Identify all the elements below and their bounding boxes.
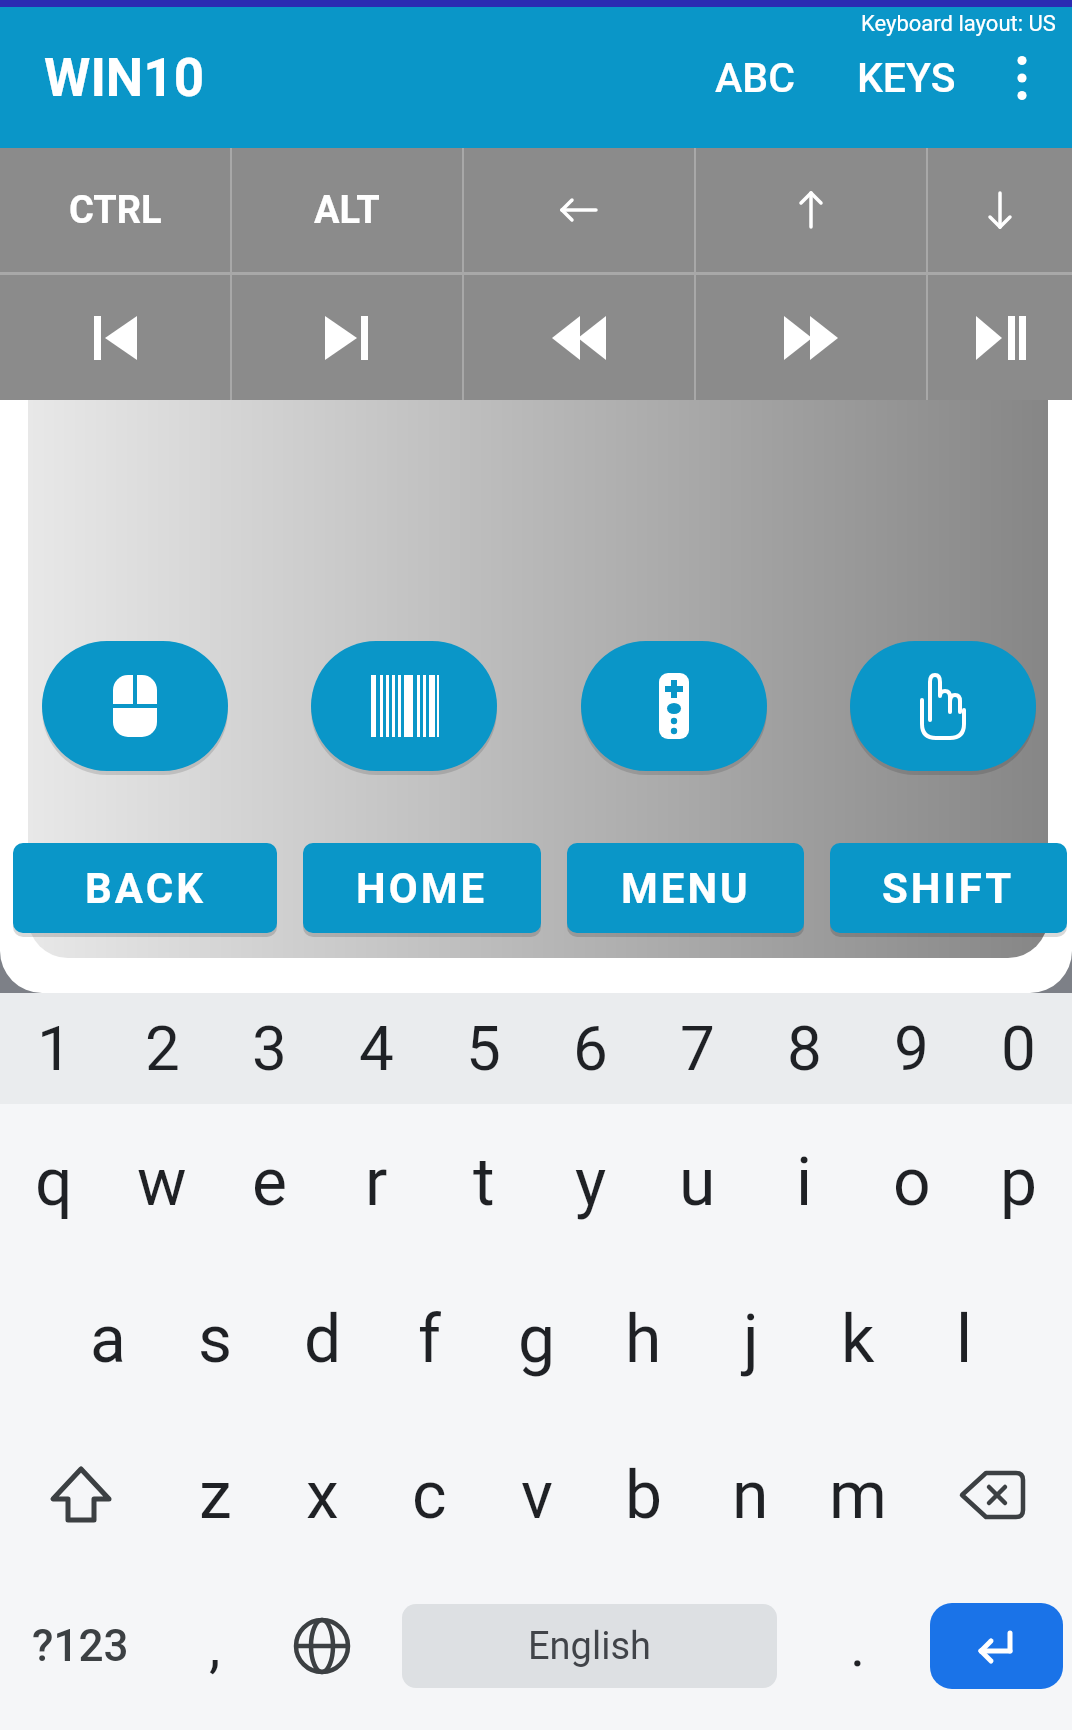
button[interactable]: SHIFT: [830, 843, 1067, 933]
staticText: 2: [145, 1012, 180, 1085]
button[interactable]: [696, 275, 926, 400]
button[interactable]: n: [697, 1417, 804, 1573]
staticText: BACK: [85, 864, 206, 913]
button[interactable]: [42, 641, 228, 771]
button[interactable]: w: [108, 1104, 216, 1261]
button[interactable]: x: [269, 1417, 376, 1573]
button[interactable]: [696, 148, 926, 272]
staticText: CTRL: [69, 188, 162, 233]
staticText: English: [528, 1624, 651, 1669]
button[interactable]: 2: [108, 993, 216, 1104]
button[interactable]: BACK: [13, 843, 277, 933]
staticText: 8: [787, 1012, 822, 1085]
button[interactable]: q: [0, 1104, 108, 1261]
button[interactable]: [930, 1603, 1063, 1689]
button[interactable]: l: [911, 1261, 1018, 1417]
button[interactable]: e: [216, 1104, 323, 1261]
button[interactable]: c: [376, 1417, 483, 1573]
button[interactable]: v: [483, 1417, 590, 1573]
button[interactable]: 1: [0, 993, 108, 1104]
staticText: c: [412, 1457, 447, 1534]
staticText: a: [90, 1301, 126, 1378]
staticText: u: [679, 1144, 716, 1221]
button[interactable]: y: [537, 1104, 644, 1261]
staticText: r: [365, 1144, 388, 1221]
staticText: z: [199, 1457, 232, 1534]
staticText: 4: [359, 1012, 394, 1085]
staticText: WIN10: [44, 47, 205, 109]
staticText: d: [304, 1301, 342, 1378]
staticText: y: [575, 1144, 607, 1221]
button[interactable]: d: [269, 1261, 376, 1417]
button[interactable]: 6: [537, 993, 644, 1104]
staticText: p: [1000, 1144, 1038, 1221]
button[interactable]: [911, 1417, 1072, 1573]
staticText: HOME: [356, 864, 488, 913]
button[interactable]: o: [858, 1104, 965, 1261]
button[interactable]: p: [965, 1104, 1072, 1261]
button[interactable]: f: [376, 1261, 483, 1417]
button[interactable]: [990, 46, 1054, 110]
staticText: MENU: [621, 864, 751, 913]
button[interactable]: MENU: [567, 843, 804, 933]
button[interactable]: [581, 641, 767, 771]
staticText: SHIFT: [882, 864, 1015, 913]
button[interactable]: CTRL: [0, 148, 230, 272]
button[interactable]: 4: [323, 993, 430, 1104]
button[interactable]: [928, 148, 1072, 272]
button[interactable]: [268, 1573, 375, 1718]
button[interactable]: a: [54, 1261, 162, 1417]
button[interactable]: 0: [965, 993, 1072, 1104]
staticText: KEYS: [857, 54, 956, 102]
button[interactable]: ABC: [695, 54, 815, 102]
button[interactable]: m: [804, 1417, 911, 1573]
button[interactable]: [232, 275, 462, 400]
staticText: b: [625, 1457, 663, 1534]
staticText: x: [306, 1457, 339, 1534]
button[interactable]: z: [162, 1417, 269, 1573]
staticText: 5: [466, 1012, 501, 1085]
button[interactable]: HOME: [303, 843, 541, 933]
button[interactable]: WIN10: [44, 47, 205, 109]
staticText: ABC: [715, 54, 795, 102]
staticText: q: [35, 1144, 73, 1221]
button[interactable]: i: [751, 1104, 858, 1261]
button[interactable]: h: [590, 1261, 697, 1417]
button[interactable]: [928, 275, 1072, 400]
button[interactable]: ?123: [0, 1573, 161, 1718]
button[interactable]: s: [162, 1261, 269, 1417]
staticText: t: [473, 1144, 495, 1221]
button[interactable]: 8: [751, 993, 858, 1104]
button[interactable]: u: [644, 1104, 751, 1261]
button[interactable]: t: [430, 1104, 537, 1261]
button[interactable]: j: [697, 1261, 804, 1417]
staticText: m: [829, 1457, 887, 1534]
button[interactable]: 9: [858, 993, 965, 1104]
button[interactable]: r: [323, 1104, 430, 1261]
button[interactable]: 5: [430, 993, 537, 1104]
button[interactable]: b: [590, 1417, 697, 1573]
button[interactable]: [0, 1417, 162, 1573]
staticText: k: [841, 1301, 875, 1378]
button[interactable]: k: [804, 1261, 911, 1417]
button[interactable]: KEYS: [837, 54, 976, 102]
staticText: 9: [894, 1012, 929, 1085]
staticText: 0: [1001, 1012, 1036, 1085]
button[interactable]: [0, 275, 230, 400]
staticText: ,: [209, 1612, 221, 1680]
button[interactable]: 7: [644, 993, 751, 1104]
button[interactable]: English: [402, 1604, 777, 1688]
staticText: o: [893, 1144, 931, 1221]
staticText: e: [252, 1144, 287, 1221]
staticText: ALT: [314, 188, 380, 233]
button[interactable]: ALT: [232, 148, 462, 272]
button[interactable]: ,: [161, 1573, 268, 1718]
button[interactable]: [850, 641, 1036, 771]
button[interactable]: .: [804, 1573, 911, 1718]
button[interactable]: [464, 275, 694, 400]
button[interactable]: g: [483, 1261, 590, 1417]
button[interactable]: 3: [216, 993, 323, 1104]
staticText: ?123: [32, 1620, 129, 1672]
button[interactable]: [464, 148, 694, 272]
button[interactable]: [311, 641, 497, 771]
